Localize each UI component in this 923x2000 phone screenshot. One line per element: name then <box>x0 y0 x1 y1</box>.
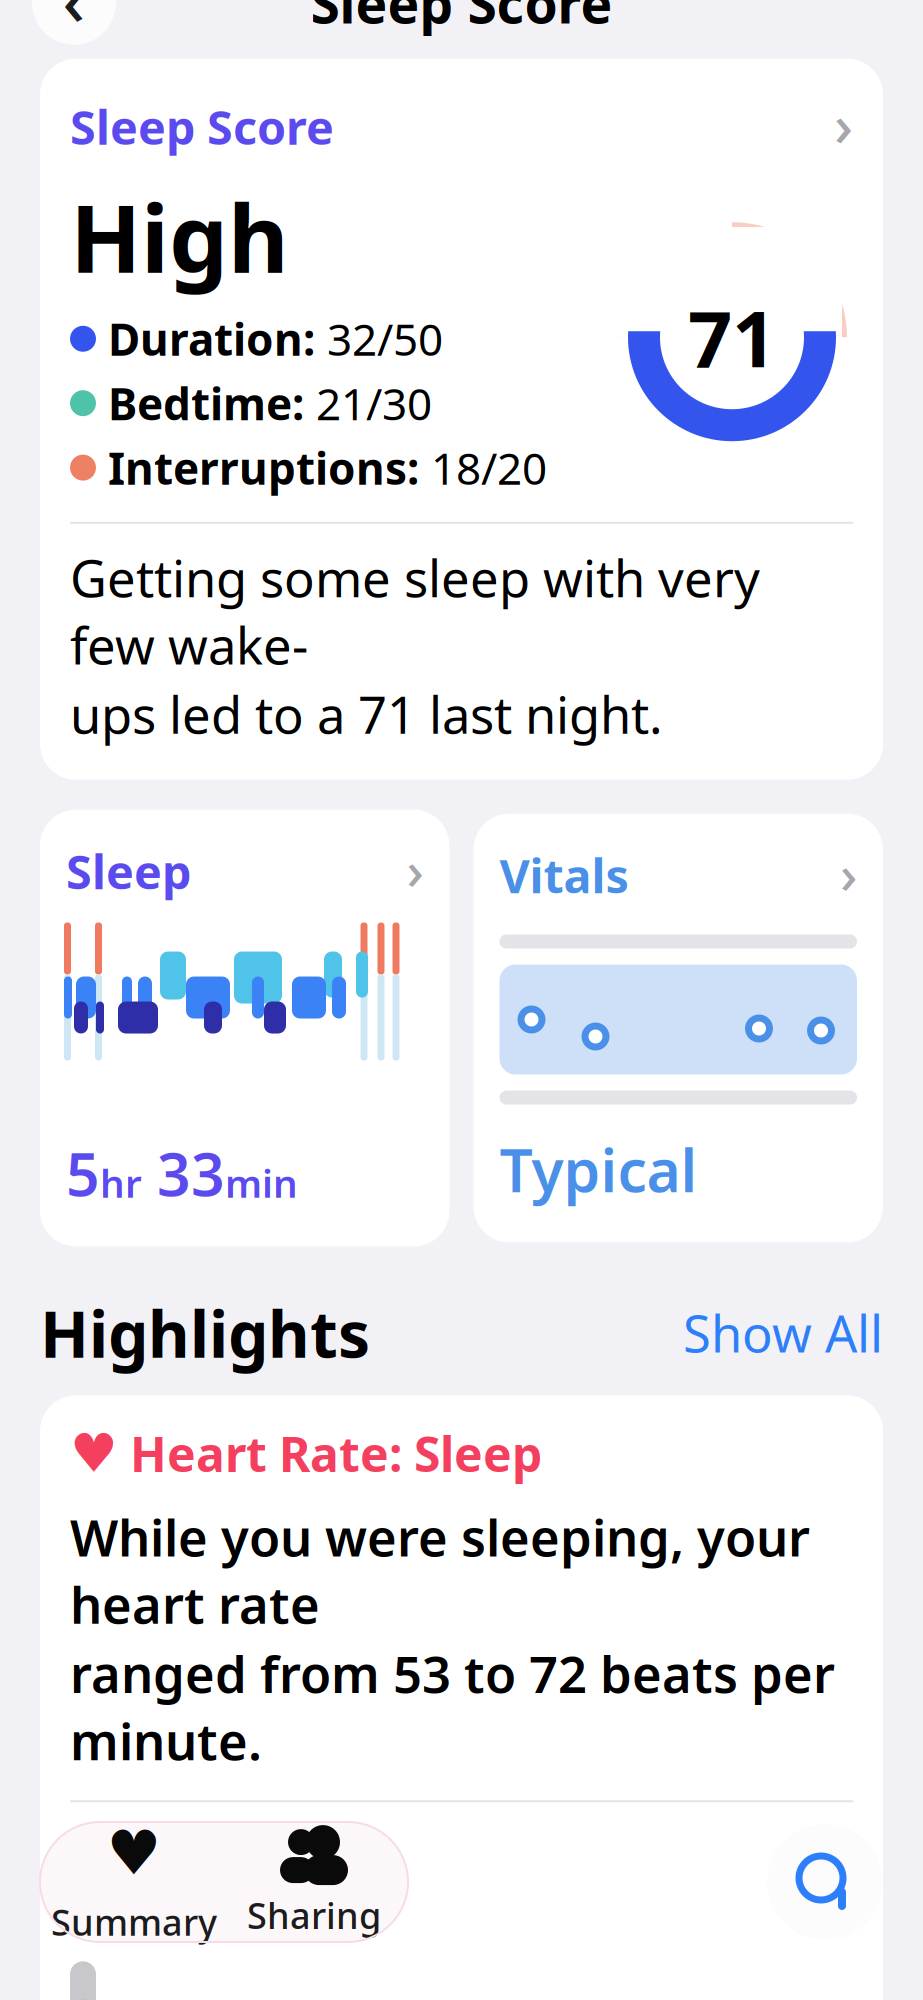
staticText: 21/30 <box>316 374 432 432</box>
button[interactable]: Search <box>767 1824 883 1940</box>
staticText: › <box>834 85 853 163</box>
staticText: › <box>406 834 423 904</box>
staticText: Typical <box>499 1130 697 1208</box>
button[interactable]: Vitals <box>473 814 883 1242</box>
staticText: ♥ <box>70 1423 118 1483</box>
staticText: While you were sleeping, your heart rate <box>70 1503 810 1638</box>
button[interactable]: Sharing <box>224 1822 404 1942</box>
staticText: Interruptions: <box>108 438 419 497</box>
staticText: min <box>225 1157 298 1208</box>
staticText: Summary <box>51 1898 217 1946</box>
staticText: 72 <box>70 1870 144 1955</box>
staticText: Sharing <box>247 1891 381 1939</box>
staticText: 71 <box>688 286 776 389</box>
staticText: 5 <box>66 1134 100 1212</box>
button[interactable]: Show All <box>683 1299 883 1367</box>
staticText: ‹ <box>62 0 85 45</box>
staticText: Duration: <box>108 309 315 368</box>
staticText: High <box>70 175 289 298</box>
staticText: Sleep Score <box>70 96 334 158</box>
staticText: Bedtime: <box>108 374 304 432</box>
staticText: MAX <box>70 1824 150 1870</box>
button[interactable]: Sleep Score <box>40 59 883 780</box>
staticText: › <box>840 838 857 908</box>
staticText: 18/20 <box>431 438 547 497</box>
staticText: hr <box>100 1157 142 1208</box>
button[interactable]: ♥ <box>40 1395 883 2000</box>
button[interactable]: Back <box>32 0 116 53</box>
staticText: Highlights <box>40 1290 370 1375</box>
staticText: ups led to a 71 last night. <box>70 680 663 748</box>
staticText: ranged from 53 to 72 beats per minute. <box>70 1640 835 1774</box>
button[interactable]: Sleep <box>40 810 449 1246</box>
staticText: 32/50 <box>327 309 443 368</box>
staticText: Show All <box>683 1299 883 1367</box>
button[interactable]: ♥ <box>44 1822 224 1942</box>
staticText: Sleep <box>66 840 191 902</box>
staticText: Heart Rate: Sleep <box>130 1421 542 1485</box>
staticText: Sleep Score <box>310 0 612 38</box>
staticText: Vitals <box>499 844 628 906</box>
staticText: Getting some sleep with very few wake- <box>70 544 760 678</box>
staticText: ♥ <box>106 1818 161 1888</box>
staticText: 33 <box>142 1134 225 1212</box>
